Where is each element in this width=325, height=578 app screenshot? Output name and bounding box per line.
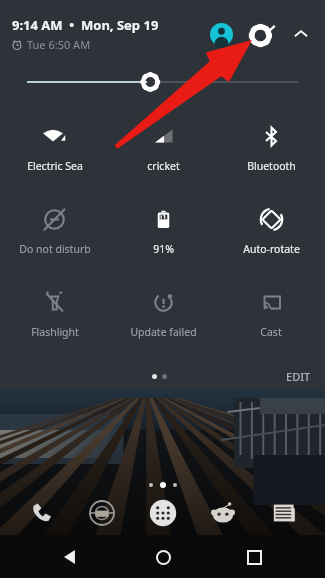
- button[interactable]: User profile: [207, 20, 235, 48]
- button[interactable]: Brightness: [0, 69, 325, 95]
- staticText: Cast: [260, 325, 282, 339]
- staticText: Update failed: [130, 325, 197, 339]
- button[interactable]: 91%: [109, 194, 217, 277]
- button[interactable]: Recents: [234, 537, 274, 577]
- staticText: 9:14 AM • Mon, Sep 19: [12, 16, 159, 34]
- staticText: 91%: [153, 242, 174, 256]
- button[interactable]: EDIT: [286, 369, 311, 384]
- button[interactable]: cricket: [109, 111, 217, 194]
- button[interactable]: Reddit: [204, 494, 242, 532]
- button[interactable]: All apps: [144, 494, 182, 532]
- button[interactable]: News: [265, 494, 303, 532]
- staticText: Flashlight: [31, 325, 79, 339]
- staticText: Bluetooth: [247, 159, 296, 173]
- button[interactable]: Browser: [83, 494, 121, 532]
- button[interactable]: Update failed: [109, 277, 217, 360]
- button[interactable]: Do not disturb: [0, 194, 109, 277]
- button[interactable]: Bluetooth: [217, 111, 325, 194]
- button[interactable]: Flashlight: [0, 277, 109, 360]
- button[interactable]: Electric Sea: [0, 111, 109, 194]
- button[interactable]: Collapse: [287, 20, 315, 48]
- staticText: cricket: [147, 159, 180, 173]
- staticText: EDIT: [286, 369, 311, 384]
- button[interactable]: Cast: [217, 277, 325, 360]
- staticText: Tue 6:50 AM: [27, 37, 91, 52]
- staticText: Electric Sea: [27, 159, 83, 173]
- button[interactable]: Back: [51, 537, 91, 577]
- staticText: Do not disturb: [19, 242, 91, 256]
- button[interactable]: Home: [143, 537, 183, 577]
- staticText: Auto-rotate: [243, 242, 300, 256]
- button[interactable]: Phone: [23, 494, 61, 532]
- button[interactable]: Settings: [248, 20, 278, 50]
- button[interactable]: Auto-rotate: [217, 194, 325, 277]
